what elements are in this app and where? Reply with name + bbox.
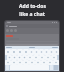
button[interactable] bbox=[7, 55, 12, 60]
button[interactable] bbox=[23, 60, 29, 65]
button[interactable]: More options bbox=[5, 24, 59, 28]
button[interactable] bbox=[14, 29, 17, 32]
button[interactable] bbox=[44, 49, 49, 55]
button[interactable] bbox=[12, 55, 17, 60]
button[interactable] bbox=[5, 43, 59, 46]
button[interactable] bbox=[17, 55, 22, 60]
button[interactable] bbox=[10, 29, 13, 32]
button[interactable] bbox=[33, 55, 39, 60]
button[interactable] bbox=[11, 49, 17, 55]
button[interactable] bbox=[23, 49, 29, 55]
button[interactable] bbox=[29, 49, 34, 55]
button[interactable] bbox=[54, 49, 59, 55]
button[interactable] bbox=[5, 60, 11, 65]
button[interactable] bbox=[6, 47, 12, 48]
button[interactable] bbox=[52, 47, 58, 48]
button[interactable] bbox=[39, 49, 44, 55]
button[interactable] bbox=[27, 55, 33, 60]
button[interactable] bbox=[11, 60, 17, 65]
button[interactable] bbox=[29, 47, 35, 48]
button[interactable] bbox=[39, 55, 45, 60]
button[interactable] bbox=[17, 60, 23, 65]
button[interactable] bbox=[47, 60, 53, 65]
button[interactable] bbox=[51, 55, 57, 60]
button[interactable] bbox=[35, 60, 41, 65]
button[interactable] bbox=[22, 55, 27, 60]
button[interactable] bbox=[6, 29, 9, 32]
button[interactable] bbox=[45, 55, 51, 60]
staticText: Add to-dos bbox=[19, 3, 46, 10]
button[interactable] bbox=[29, 60, 35, 65]
button[interactable] bbox=[34, 49, 39, 55]
button[interactable] bbox=[53, 60, 59, 65]
button[interactable] bbox=[41, 60, 47, 65]
button[interactable] bbox=[5, 49, 11, 55]
button[interactable] bbox=[6, 35, 58, 37]
staticText: like a chat bbox=[19, 11, 45, 18]
button[interactable] bbox=[17, 49, 23, 55]
button[interactable] bbox=[49, 49, 54, 55]
